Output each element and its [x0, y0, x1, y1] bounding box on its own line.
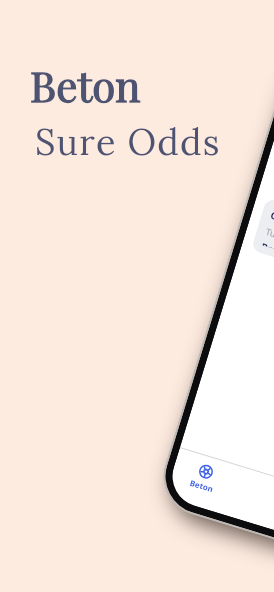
staticText: Sure Odds [35, 119, 221, 165]
button[interactable]: Chelsea vs Arsenal [251, 197, 274, 306]
staticText: Prediction: 1X [262, 239, 274, 265]
other: Beton [197, 463, 215, 480]
staticText: Tue 21:00 [264, 225, 274, 248]
staticText: Beton [189, 477, 215, 494]
button[interactable]: Beton [176, 456, 232, 500]
staticText: Beton [30, 57, 141, 113]
staticText: Chelsea vs Arsenal [269, 208, 274, 248]
